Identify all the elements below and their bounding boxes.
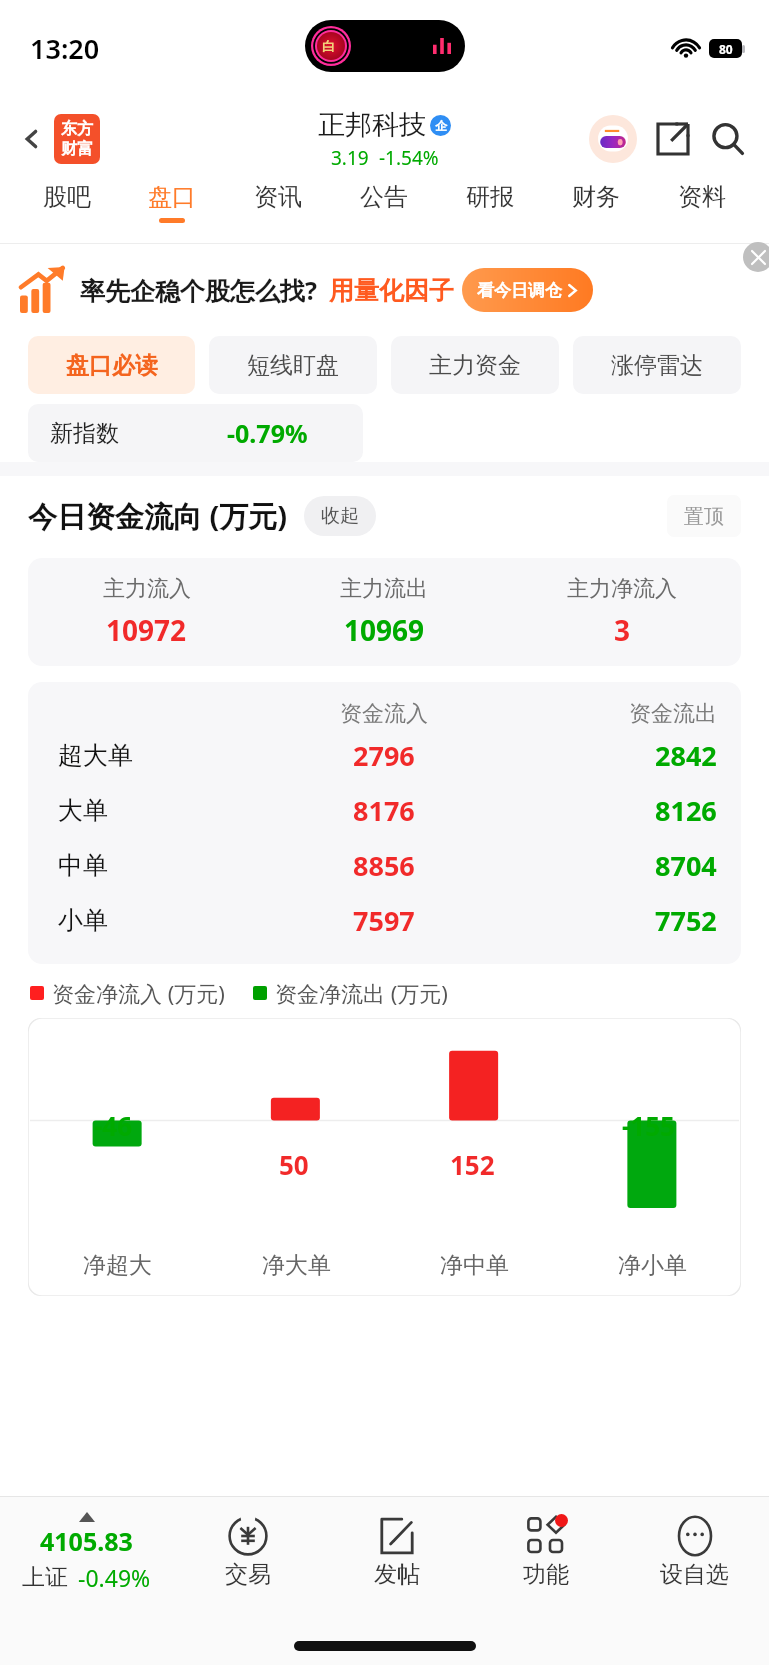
staticText: -1.54%: [379, 145, 439, 171]
staticText: 10972: [106, 611, 187, 649]
staticText: 财务: [572, 182, 620, 212]
staticText: -0.79%: [227, 416, 308, 450]
button[interactable]: 财务: [543, 182, 649, 223]
staticText: 资金流入: [340, 700, 428, 728]
staticText: 用量化因子: [329, 275, 454, 306]
button[interactable]: 资料: [649, 182, 755, 223]
button[interactable]: 大单: [28, 783, 741, 838]
staticText: -0.49%: [78, 1562, 151, 1593]
button[interactable]: 超大单: [28, 728, 741, 783]
staticText: 10969: [344, 611, 425, 649]
staticText: 主力净流入: [567, 575, 677, 603]
staticText: 新指数: [50, 419, 119, 448]
staticText: 3: [614, 611, 631, 649]
staticText: 超大单: [58, 740, 133, 771]
button[interactable]: 交易: [173, 1516, 322, 1589]
staticText: 8704: [655, 847, 717, 884]
button[interactable]: 中单: [28, 838, 741, 893]
button[interactable]: 研报: [437, 182, 543, 223]
staticText: 主力流入: [103, 575, 191, 603]
button[interactable]: 盘口: [119, 182, 225, 223]
button[interactable]: Close ad: [743, 242, 769, 272]
staticText: 主力流出: [340, 575, 428, 603]
staticText: 设自选: [660, 1560, 729, 1589]
staticText: 8126: [655, 792, 717, 829]
button[interactable]: 新指数: [28, 404, 363, 462]
staticText: 中单: [58, 850, 108, 881]
staticText: 研报: [466, 182, 514, 212]
staticText: 50: [279, 1147, 309, 1182]
button[interactable]: 股吧: [14, 182, 119, 223]
staticText: 8856: [353, 847, 415, 884]
staticText: 8176: [353, 792, 415, 829]
button[interactable]: 公告: [331, 182, 437, 223]
staticText: 功能: [523, 1560, 569, 1589]
button[interactable]: 设自选: [620, 1516, 769, 1589]
staticText: 7597: [353, 902, 415, 939]
button[interactable]: 涨停雷达: [573, 336, 741, 394]
staticText: 公告: [360, 182, 408, 212]
staticText: 白: [322, 38, 335, 54]
staticText: 置顶: [684, 504, 724, 529]
staticText: 看今日调仓: [477, 280, 562, 301]
button[interactable]: AI assistant: [587, 113, 639, 165]
staticText: 涨停雷达: [611, 351, 703, 380]
button[interactable]: 看今日调仓: [462, 268, 593, 312]
staticText: 资讯: [254, 182, 302, 212]
staticText: 13:20: [30, 30, 100, 67]
staticText: 财富: [61, 139, 93, 159]
staticText: 资金流出: [629, 700, 717, 728]
staticText: 交易: [225, 1560, 271, 1589]
staticText: 上证: [22, 1563, 68, 1592]
staticText: 净中单: [440, 1251, 509, 1280]
button[interactable]: 收起: [304, 496, 376, 536]
staticText: 发帖: [374, 1560, 420, 1589]
staticText: 2842: [655, 737, 717, 774]
staticText: 大单: [58, 795, 108, 826]
staticText: 小单: [58, 905, 108, 936]
button[interactable]: 主力资金: [391, 336, 559, 394]
staticText: 收起: [321, 504, 359, 528]
staticText: 3.19: [331, 145, 369, 171]
staticText: 股吧: [43, 182, 91, 212]
button[interactable]: 置顶: [667, 495, 741, 537]
button[interactable]: 短线盯盘: [209, 336, 377, 394]
staticText: 净小单: [618, 1251, 687, 1280]
staticText: 今日资金流向 (万元): [28, 496, 288, 536]
staticText: 4105.83: [40, 1524, 133, 1558]
button[interactable]: Share: [649, 115, 697, 163]
staticText: 7752: [655, 902, 717, 939]
staticText: 资料: [678, 182, 726, 212]
staticText: 正邦科技: [318, 108, 426, 142]
button[interactable]: Search: [703, 114, 753, 164]
button[interactable]: 小单: [28, 893, 741, 948]
staticText: 2796: [353, 737, 415, 774]
staticText: 主力资金: [429, 351, 521, 380]
button[interactable]: 功能: [471, 1516, 620, 1589]
staticText: 净大单: [262, 1251, 331, 1280]
staticText: -155: [622, 1108, 675, 1143]
staticText: 率先企稳个股怎么找?: [80, 273, 317, 307]
staticText: -46: [94, 1108, 133, 1143]
staticText: 净超大: [83, 1251, 152, 1280]
staticText: 盘口必读: [66, 351, 158, 380]
staticText: 152: [450, 1147, 495, 1182]
button[interactable]: 发帖: [322, 1516, 471, 1589]
staticText: 东方: [61, 119, 93, 139]
button[interactable]: 东方财富: [54, 114, 100, 164]
staticText: 盘口: [148, 182, 196, 212]
staticText: 短线盯盘: [247, 351, 339, 380]
button[interactable]: 资讯: [225, 182, 331, 223]
button[interactable]: 4105.83: [0, 1512, 173, 1593]
staticText: 企: [435, 118, 447, 133]
button[interactable]: 盘口必读: [28, 336, 195, 394]
staticText: 资金净流入 (万元): [52, 978, 225, 1008]
staticText: 资金净流出 (万元): [275, 978, 448, 1008]
staticText: 80: [719, 41, 733, 57]
button[interactable]: Back: [14, 121, 50, 157]
